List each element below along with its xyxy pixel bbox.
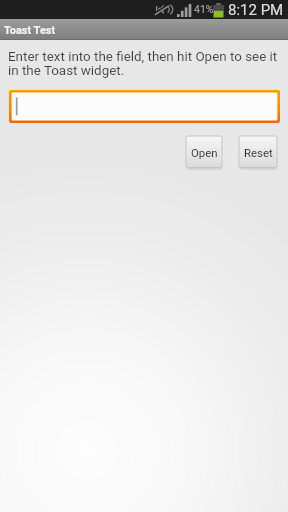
staticText: 8:12 PM <box>228 1 284 19</box>
button[interactable]: Reset <box>239 136 277 169</box>
staticText: Reset <box>244 146 273 159</box>
staticText: Open <box>191 146 218 159</box>
button[interactable]: Open <box>186 136 222 169</box>
other: Silent mode <box>154 3 170 16</box>
staticText: Enter text into the field, then hit Open… <box>8 49 280 79</box>
staticText: 41% <box>194 3 214 15</box>
other: Signal strength <box>177 4 192 17</box>
button[interactable] <box>9 90 280 123</box>
other: Battery 41 percent <box>213 3 224 18</box>
staticText: Toast Test <box>4 24 56 37</box>
